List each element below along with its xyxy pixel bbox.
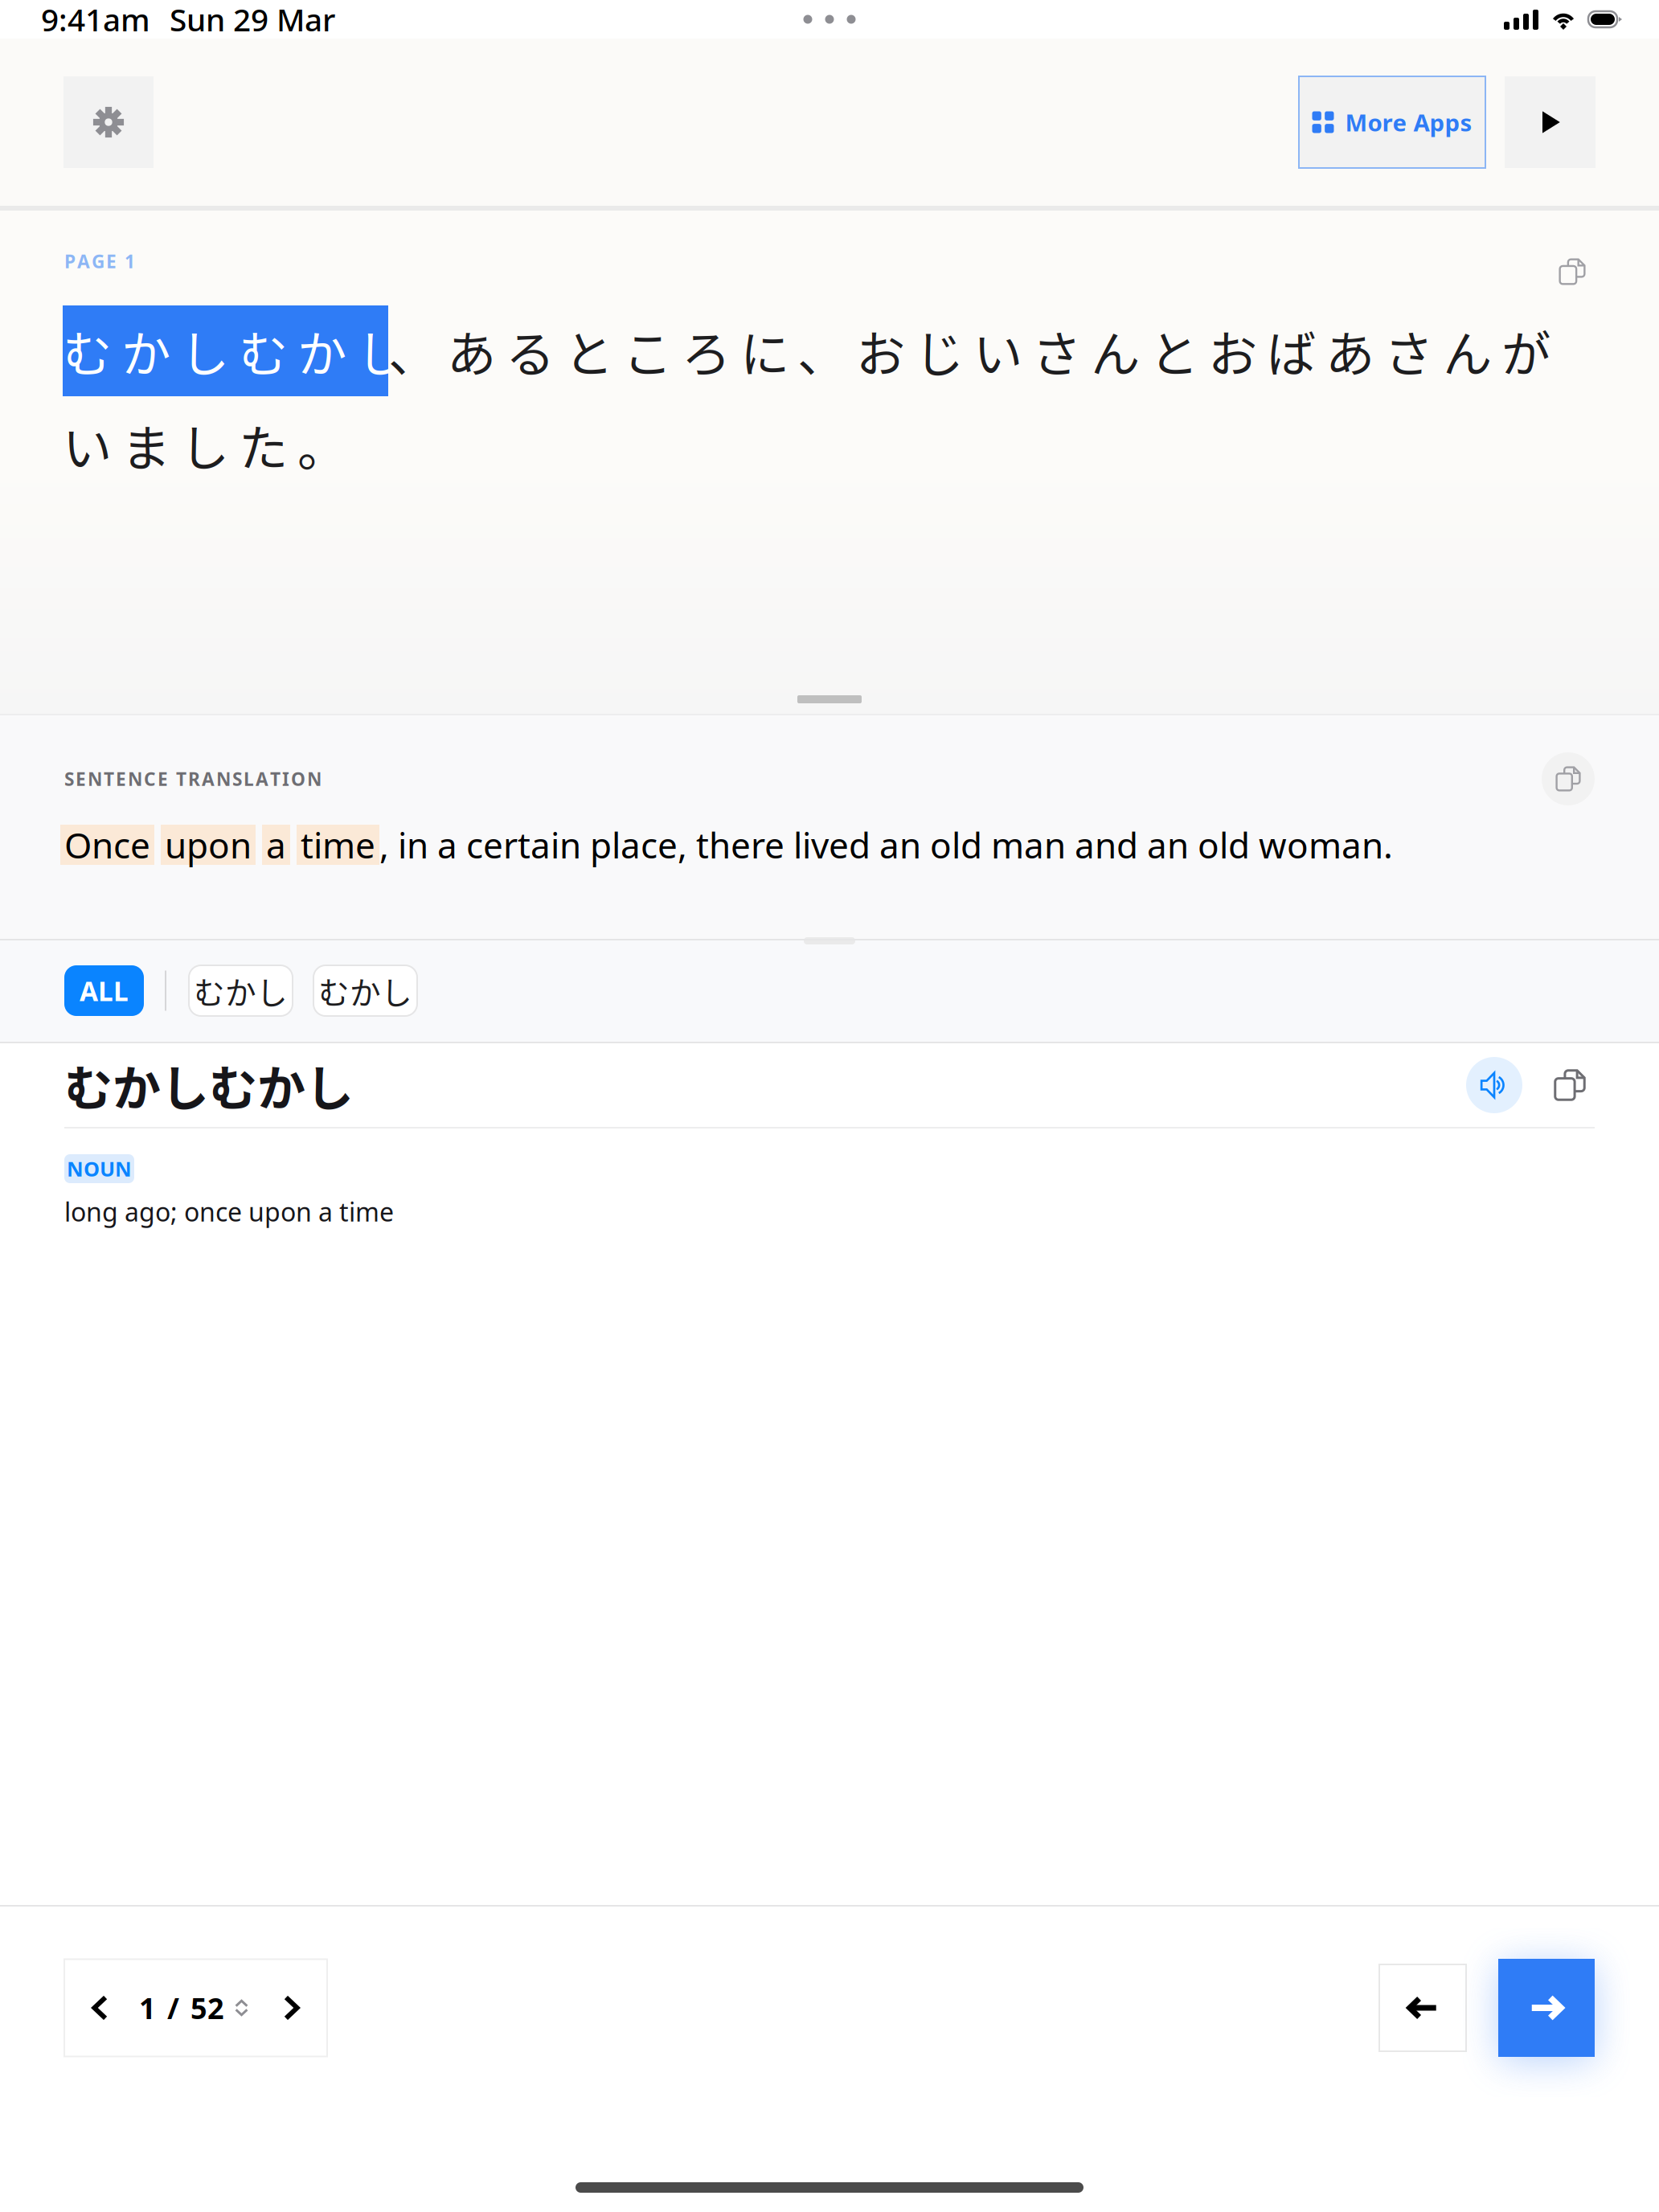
staticText: むかしむかし <box>63 315 405 387</box>
staticText: 9:41am <box>41 0 150 40</box>
staticText: a <box>266 821 286 868</box>
button[interactable]: Play pronunciation <box>1466 1057 1522 1113</box>
button[interactable]: Copy sentence <box>1550 249 1595 294</box>
staticText: Sun 29 Mar <box>170 0 335 40</box>
button[interactable]: Previous page <box>72 1979 129 2037</box>
staticText: long ago; once upon a time <box>64 1194 394 1229</box>
staticText: 1 <box>139 1989 156 2027</box>
staticText: ALL <box>80 973 129 1009</box>
staticText: Once <box>64 821 150 868</box>
button[interactable]: More Apps <box>1299 76 1485 168</box>
button[interactable]: むかし <box>313 965 417 1016</box>
staticText: , in a certain place, there lived an old… <box>379 821 1393 868</box>
button[interactable]: Copy word <box>1545 1060 1595 1110</box>
button[interactable]: Settings <box>63 76 154 168</box>
staticText: むかし <box>194 968 288 1013</box>
button[interactable]: むかし <box>189 965 293 1016</box>
staticText: 、あるところに、おじいさんとおばあさんが <box>388 315 1550 387</box>
button[interactable]: ALL <box>64 965 144 1016</box>
staticText: / <box>167 1989 179 2027</box>
staticText: むかし <box>318 968 412 1013</box>
staticText: むかしむかし <box>64 1050 354 1120</box>
staticText: upon <box>165 821 252 868</box>
button[interactable]: Back <box>1379 1964 1466 2051</box>
staticText: More Apps <box>1345 107 1472 138</box>
staticText: いました。 <box>63 409 346 481</box>
staticText: time <box>301 821 375 868</box>
staticText: P A G E 1 <box>64 249 135 273</box>
button[interactable]: Forward <box>1498 1959 1595 2057</box>
button[interactable]: Play <box>1505 76 1596 168</box>
button[interactable]: Next page <box>262 1979 320 2037</box>
staticText: S E N T E N C E T R A N S L A T I O N <box>64 767 322 791</box>
button[interactable]: Copy translation <box>1542 752 1595 805</box>
staticText: NOUN <box>67 1155 132 1182</box>
staticText: 52 <box>190 1989 224 2027</box>
